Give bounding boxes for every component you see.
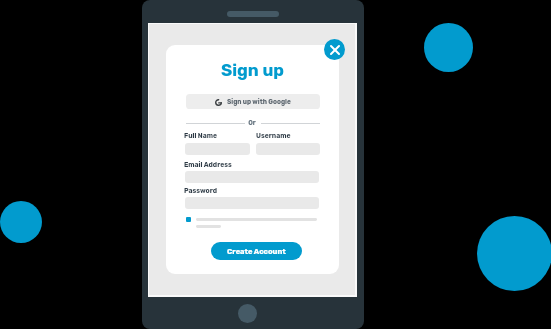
staticText: Sign up with Google <box>227 98 291 106</box>
staticText: Username <box>256 132 291 140</box>
button[interactable]: Sign up with Google <box>186 94 320 109</box>
staticText: Create Account <box>227 247 286 256</box>
button[interactable]: Create Account <box>211 242 302 260</box>
staticText: Or <box>244 119 260 127</box>
staticText: Full Name <box>184 132 218 140</box>
staticText: Password <box>184 187 218 195</box>
button[interactable]: Home <box>238 304 257 323</box>
button[interactable]: Close <box>324 39 345 60</box>
staticText: Email Address <box>184 161 232 169</box>
staticText: Sign up <box>166 60 339 80</box>
button[interactable]: Accept terms <box>186 217 191 222</box>
